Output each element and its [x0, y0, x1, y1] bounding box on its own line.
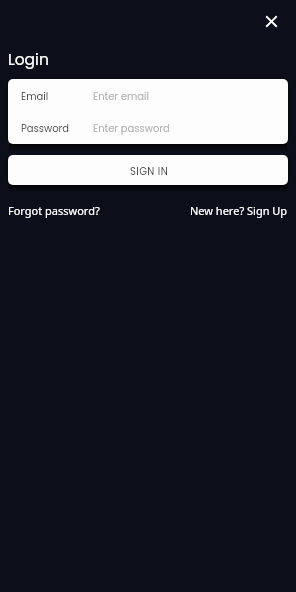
button[interactable]: New here? Sign Up	[190, 203, 288, 218]
staticText: SIGN IN	[130, 164, 169, 178]
button[interactable]: Forgot password?	[8, 203, 100, 218]
button[interactable]: Email	[8, 79, 288, 112]
button[interactable]: Close	[258, 8, 284, 34]
staticText: Enter password	[93, 121, 170, 135]
staticText: Enter email	[93, 89, 149, 103]
staticText: Email	[21, 89, 93, 103]
staticText: Password	[21, 121, 93, 135]
button[interactable]: SIGN IN	[8, 155, 288, 185]
button[interactable]: Password	[8, 112, 288, 144]
staticText: Login	[8, 49, 49, 71]
